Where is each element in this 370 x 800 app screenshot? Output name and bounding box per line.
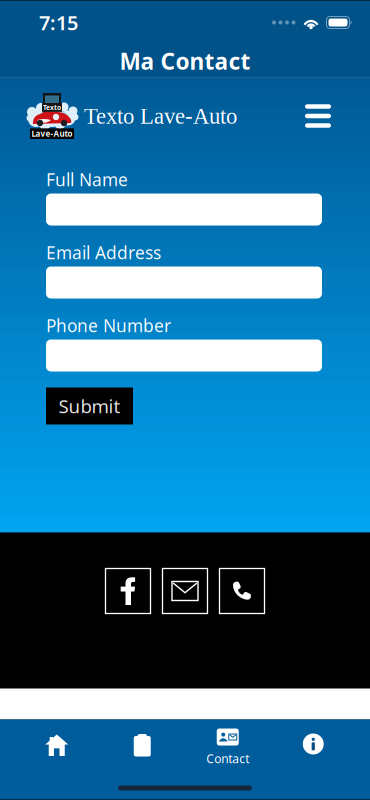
- button[interactable]: Menu: [296, 94, 340, 138]
- staticText: Ma Contact: [119, 46, 250, 76]
- staticText: Submit: [58, 394, 120, 418]
- staticText: Lave-Auto: [31, 128, 72, 139]
- button[interactable]: Info: [270, 719, 356, 769]
- button[interactable]: Home: [14, 719, 99, 769]
- staticText: Phone Number: [46, 314, 171, 337]
- staticText: Texto: [43, 103, 61, 112]
- staticText: Full Name: [46, 168, 128, 191]
- button[interactable]: Facebook: [105, 568, 150, 613]
- button[interactable]: Services: [99, 719, 185, 769]
- button[interactable]: Submit: [46, 387, 133, 424]
- staticText: Texto Lave-Auto: [84, 103, 237, 128]
- staticText: Email Address: [46, 241, 161, 264]
- staticText: Contact: [206, 750, 249, 766]
- button[interactable]: Contact: [185, 719, 270, 769]
- staticText: 7:15: [39, 9, 78, 36]
- button[interactable]: Call: [219, 568, 264, 613]
- button[interactable]: Email: [162, 568, 207, 613]
